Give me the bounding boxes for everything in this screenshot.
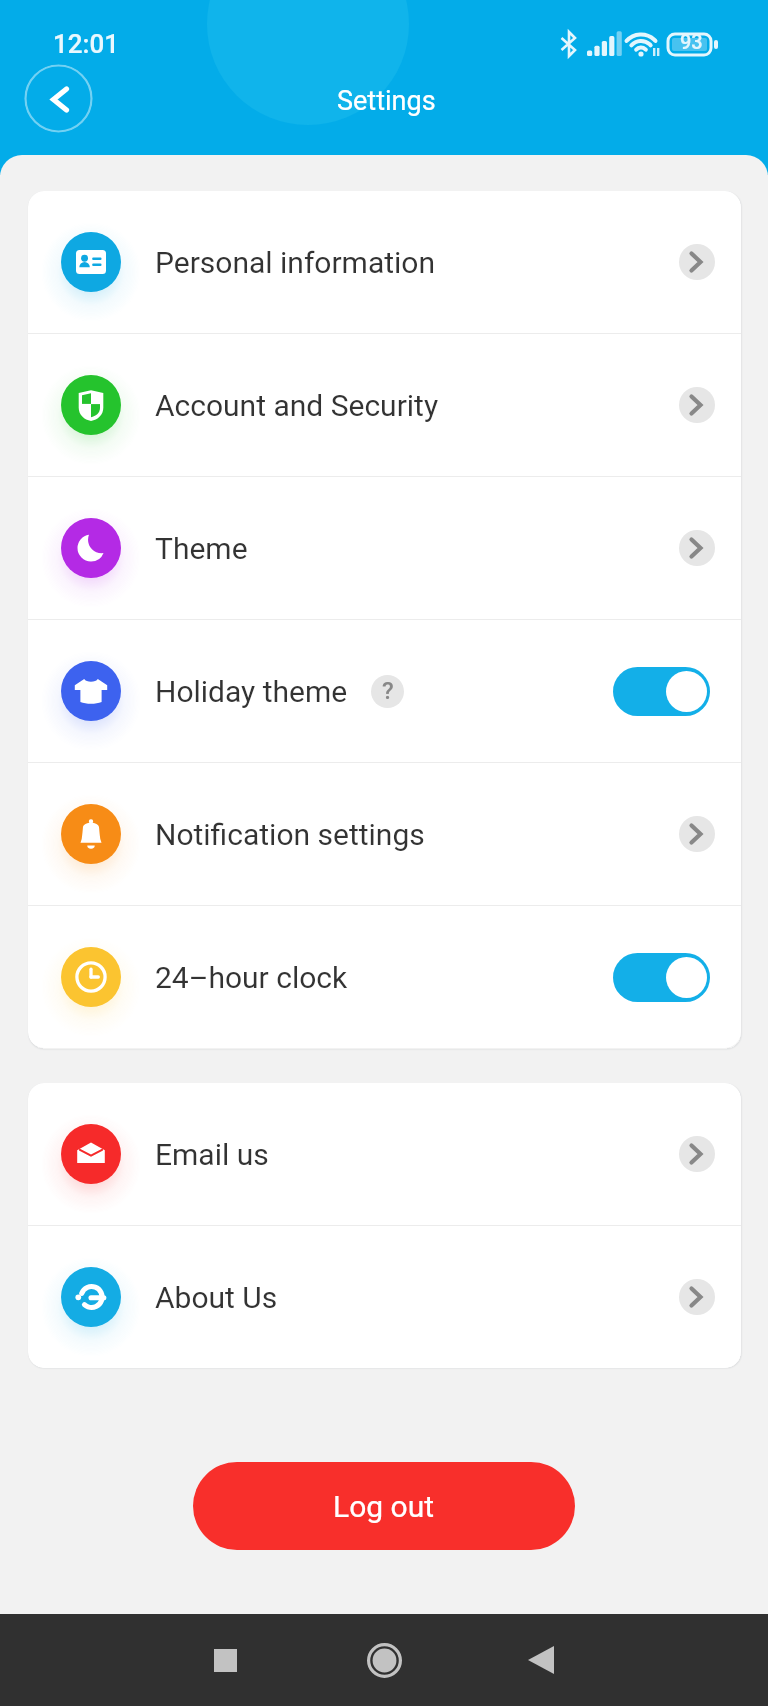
- staticText: Holiday theme: [155, 674, 348, 709]
- button[interactable]: Home: [325, 1614, 443, 1706]
- button[interactable]: 24–hour clock: [28, 906, 741, 1048]
- staticText: Personal information: [155, 245, 436, 280]
- staticText: Theme: [155, 531, 248, 566]
- button[interactable]: Notification settings: [28, 763, 741, 905]
- button[interactable]: Open Theme: [679, 530, 715, 566]
- button[interactable]: Back: [482, 1614, 600, 1706]
- staticText: 24–hour clock: [155, 960, 348, 995]
- staticText: Email us: [155, 1137, 269, 1172]
- staticText: About Us: [155, 1280, 278, 1315]
- staticText: 12:01: [53, 29, 120, 59]
- staticText: ?: [382, 677, 394, 705]
- button[interactable]: Email us: [28, 1083, 741, 1225]
- staticText: Account and Security: [155, 388, 439, 423]
- button[interactable]: Back: [24, 64, 93, 133]
- button[interactable]: Personal information: [28, 191, 741, 333]
- button[interactable]: Help about Holiday theme: [371, 675, 404, 708]
- staticText: Log out: [333, 1489, 435, 1524]
- button[interactable]: Open Personal information: [679, 244, 715, 280]
- button[interactable]: Open Account and Security: [679, 387, 715, 423]
- button[interactable]: Account and Security: [28, 334, 741, 476]
- button[interactable]: Theme: [28, 477, 741, 619]
- button[interactable]: Recents: [166, 1614, 284, 1706]
- button[interactable]: Holiday theme: [28, 620, 741, 762]
- button[interactable]: Open About Us: [679, 1279, 715, 1315]
- staticText: Notification settings: [155, 817, 425, 852]
- button[interactable]: Toggle Holiday theme: [613, 667, 710, 716]
- button[interactable]: Toggle 24–hour clock: [613, 953, 710, 1002]
- button[interactable]: Log out: [193, 1462, 575, 1550]
- button[interactable]: Open Notification settings: [679, 816, 715, 852]
- staticText: Settings: [337, 85, 436, 117]
- staticText: 93: [680, 30, 703, 53]
- button[interactable]: Open Email us: [679, 1136, 715, 1172]
- button[interactable]: About Us: [28, 1226, 741, 1368]
